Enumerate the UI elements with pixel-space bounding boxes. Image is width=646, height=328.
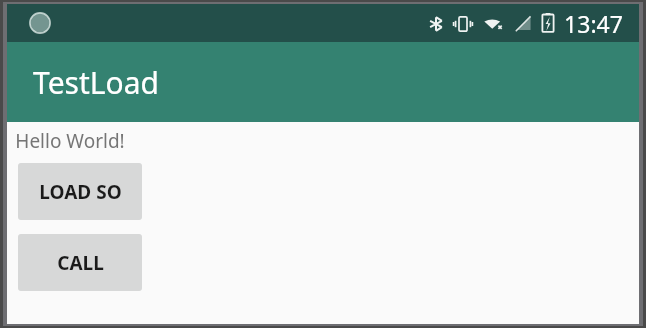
staticText: LOAD SO [39,179,122,205]
staticText: 13:47 [564,8,623,39]
button[interactable]: CALL [18,234,142,291]
button[interactable]: LOAD SO [18,163,142,220]
staticText: CALL [57,250,104,276]
staticText: Hello World! [15,128,125,154]
staticText: TestLoad [33,62,159,103]
